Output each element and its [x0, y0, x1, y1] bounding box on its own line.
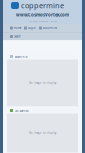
button[interactable]: Login [24, 26, 36, 30]
button[interactable]: Search [10, 35, 21, 38]
staticText: Last additions [14, 109, 28, 112]
staticText: Search [14, 35, 21, 38]
staticText: www.CosmosVortex.com [16, 12, 69, 18]
staticText: Login [28, 26, 36, 30]
staticText: Album list [43, 26, 57, 30]
staticText: Home [14, 26, 21, 30]
staticText: We make memories lasting [28, 20, 56, 23]
staticText: Random files [14, 55, 27, 58]
button[interactable]: Home [10, 26, 21, 30]
button[interactable]: Album list [39, 26, 57, 30]
staticText: No image to display [29, 131, 56, 135]
button[interactable]: Last additions [7, 107, 78, 113]
staticText: coppermine [21, 0, 64, 10]
button[interactable]: Random files [7, 53, 78, 59]
staticText: No image to display [29, 81, 56, 85]
